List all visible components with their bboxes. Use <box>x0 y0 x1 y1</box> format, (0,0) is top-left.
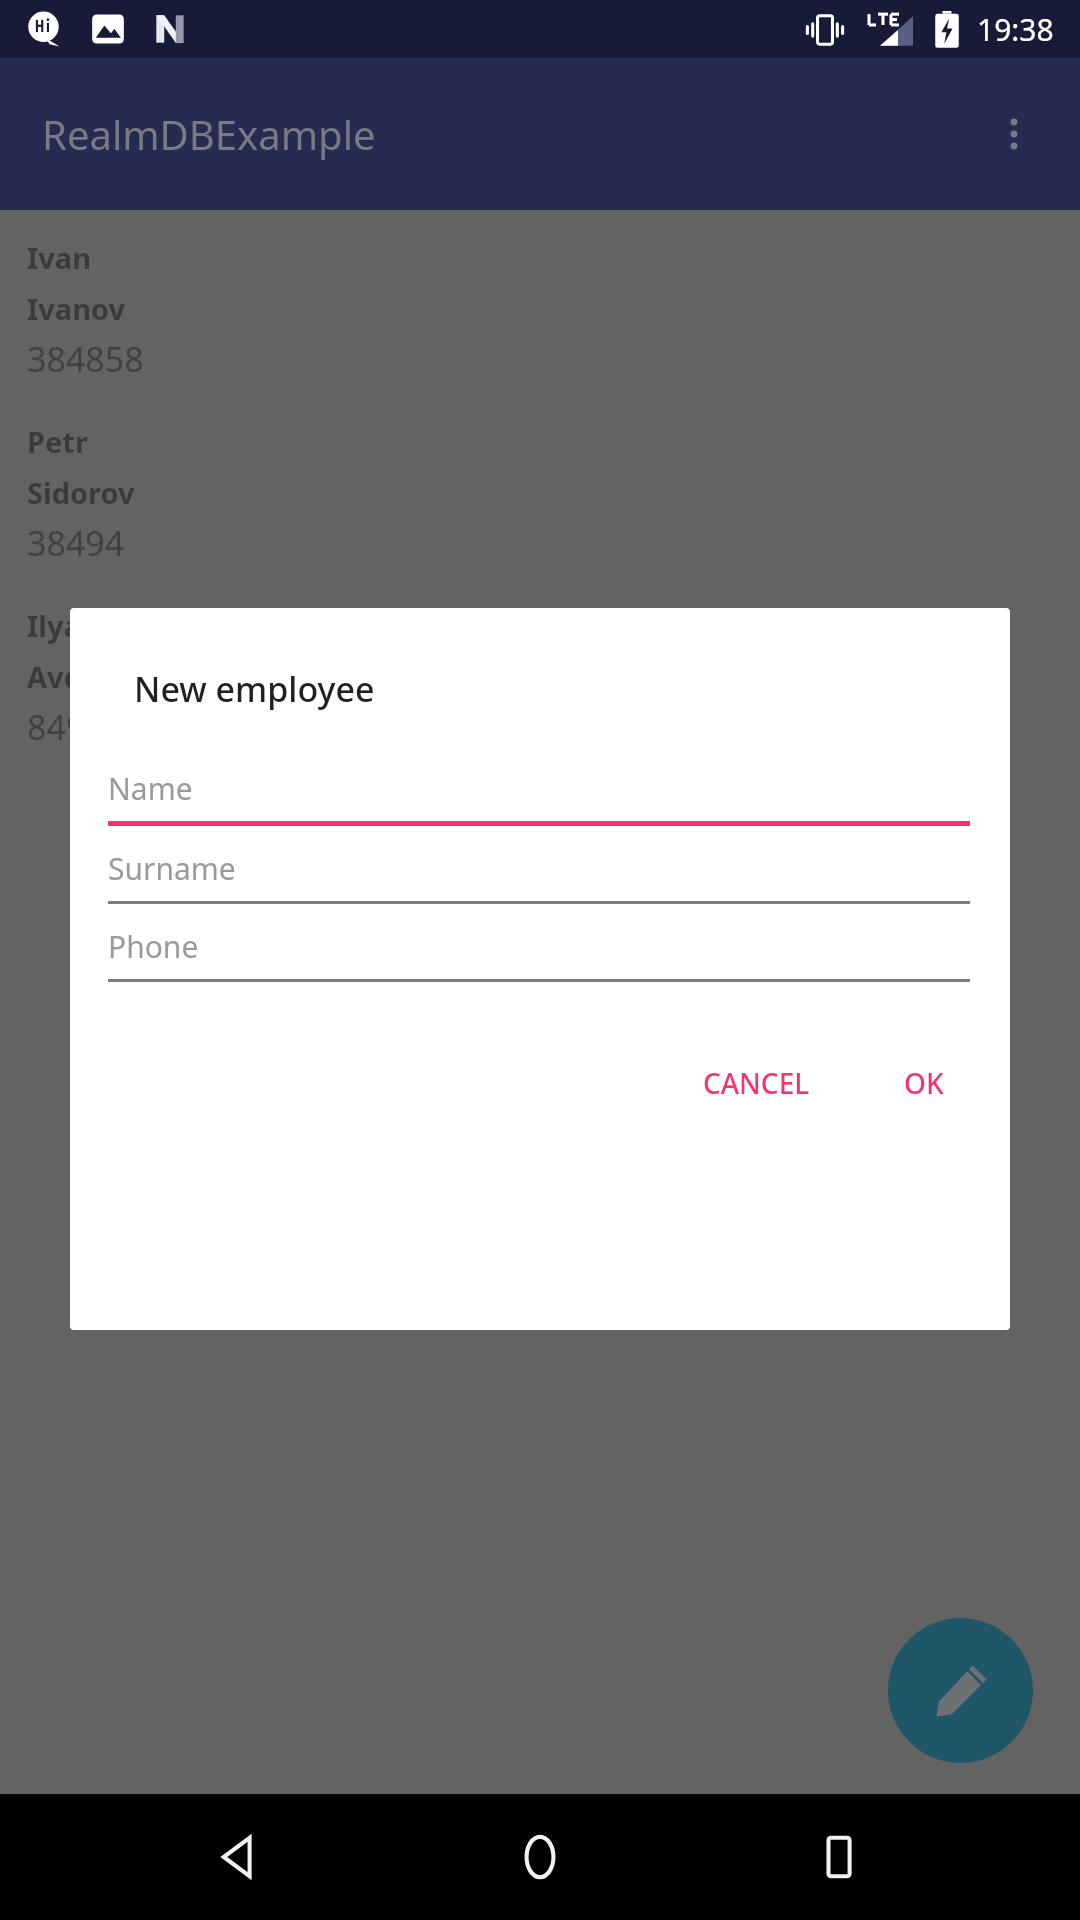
button[interactable]: New employee <box>888 1618 1033 1763</box>
staticText: Ilya <box>27 606 81 645</box>
staticText: 384858 <box>27 336 144 382</box>
staticText: Avdeev <box>27 657 133 696</box>
button[interactable]: Ilya <box>27 606 1080 750</box>
button[interactable]: Home <box>480 1797 600 1917</box>
button[interactable]: Name <box>108 768 970 826</box>
staticText: Surname <box>108 848 236 889</box>
button[interactable]: OK <box>884 1048 964 1118</box>
staticText: Ivan <box>27 238 92 277</box>
staticText: 8495 <box>27 704 105 750</box>
staticText: Name <box>108 768 193 809</box>
button[interactable]: Ivan <box>27 238 1080 382</box>
button[interactable]: Surname <box>108 848 970 904</box>
button[interactable]: Back <box>180 1797 300 1917</box>
staticText: Petr <box>27 422 88 461</box>
button[interactable]: Recent apps <box>780 1797 900 1917</box>
staticText: New employee <box>134 666 375 712</box>
button[interactable]: Petr <box>27 422 1080 566</box>
staticText: Phone <box>108 926 199 967</box>
staticText: CANCEL <box>703 1064 810 1102</box>
staticText: OK <box>904 1064 944 1102</box>
button[interactable]: CANCEL <box>683 1048 830 1118</box>
staticText: Ivanov <box>27 289 126 328</box>
button[interactable]: Phone <box>108 926 970 982</box>
staticText: RealmDBExample <box>42 107 376 161</box>
staticText: Sidorov <box>27 473 135 512</box>
staticText: 38494 <box>27 520 125 566</box>
button[interactable]: More options <box>966 86 1062 182</box>
staticText: 19:38 <box>977 9 1054 50</box>
